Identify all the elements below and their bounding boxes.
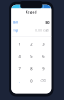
button[interactable]: Decimal point <box>14 75 25 87</box>
button[interactable]: 9 <box>37 62 49 75</box>
staticText: 5 <box>30 54 32 59</box>
staticText: 6 <box>42 54 44 59</box>
button[interactable]: Tip <box>11 27 51 33</box>
staticText: Tip <box>13 29 18 32</box>
button[interactable]: 5 <box>25 50 37 62</box>
button[interactable]: 0 <box>25 75 37 87</box>
staticText: 4 <box>18 54 20 59</box>
staticText: Bill <box>13 21 18 24</box>
button[interactable]: 1 <box>14 38 25 50</box>
staticText: 9 <box>42 66 44 71</box>
button[interactable]: Delete <box>37 75 49 87</box>
button[interactable]: 3 <box>37 38 49 50</box>
staticText: . <box>19 78 20 83</box>
staticText: 8 <box>30 66 32 71</box>
staticText: 7 <box>18 66 20 71</box>
button[interactable]: 4 <box>14 50 25 62</box>
button[interactable]: Bill <box>11 19 51 25</box>
staticText: 2 <box>30 41 32 47</box>
staticText: Keypad <box>26 11 37 14</box>
button[interactable]: 2 <box>25 38 37 50</box>
staticText: 0.00 each <box>35 29 49 32</box>
button[interactable]: 8 <box>25 62 37 75</box>
staticText: 1 <box>18 41 20 47</box>
staticText: $0 <box>45 20 49 25</box>
staticText: ⌫ <box>40 79 46 83</box>
staticText: 3 <box>42 41 44 47</box>
button[interactable]: 6 <box>37 50 49 62</box>
staticText: 0 <box>30 78 32 83</box>
button[interactable]: 7 <box>14 62 25 75</box>
